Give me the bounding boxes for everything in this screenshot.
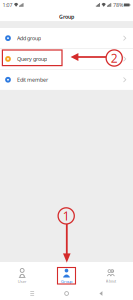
staticText: Group <box>59 13 74 20</box>
staticText: Add group <box>17 35 41 42</box>
staticText: Query group <box>17 55 47 62</box>
button[interactable]: Add group <box>0 28 133 48</box>
staticText: 1 <box>63 208 70 224</box>
button[interactable]: About <box>89 262 133 287</box>
staticText: About <box>106 278 116 284</box>
button[interactable]: User <box>0 262 44 287</box>
button[interactable]: Query group <box>0 49 133 69</box>
staticText: Edit member <box>17 76 48 83</box>
staticText: 2 <box>111 50 118 66</box>
button[interactable]: Edit member <box>0 70 133 90</box>
staticText: 1:07 <box>2 1 12 9</box>
staticText: User <box>18 279 27 284</box>
button[interactable]: Group <box>44 262 89 287</box>
staticText: 78% <box>113 1 123 9</box>
staticText: Group <box>61 279 72 284</box>
